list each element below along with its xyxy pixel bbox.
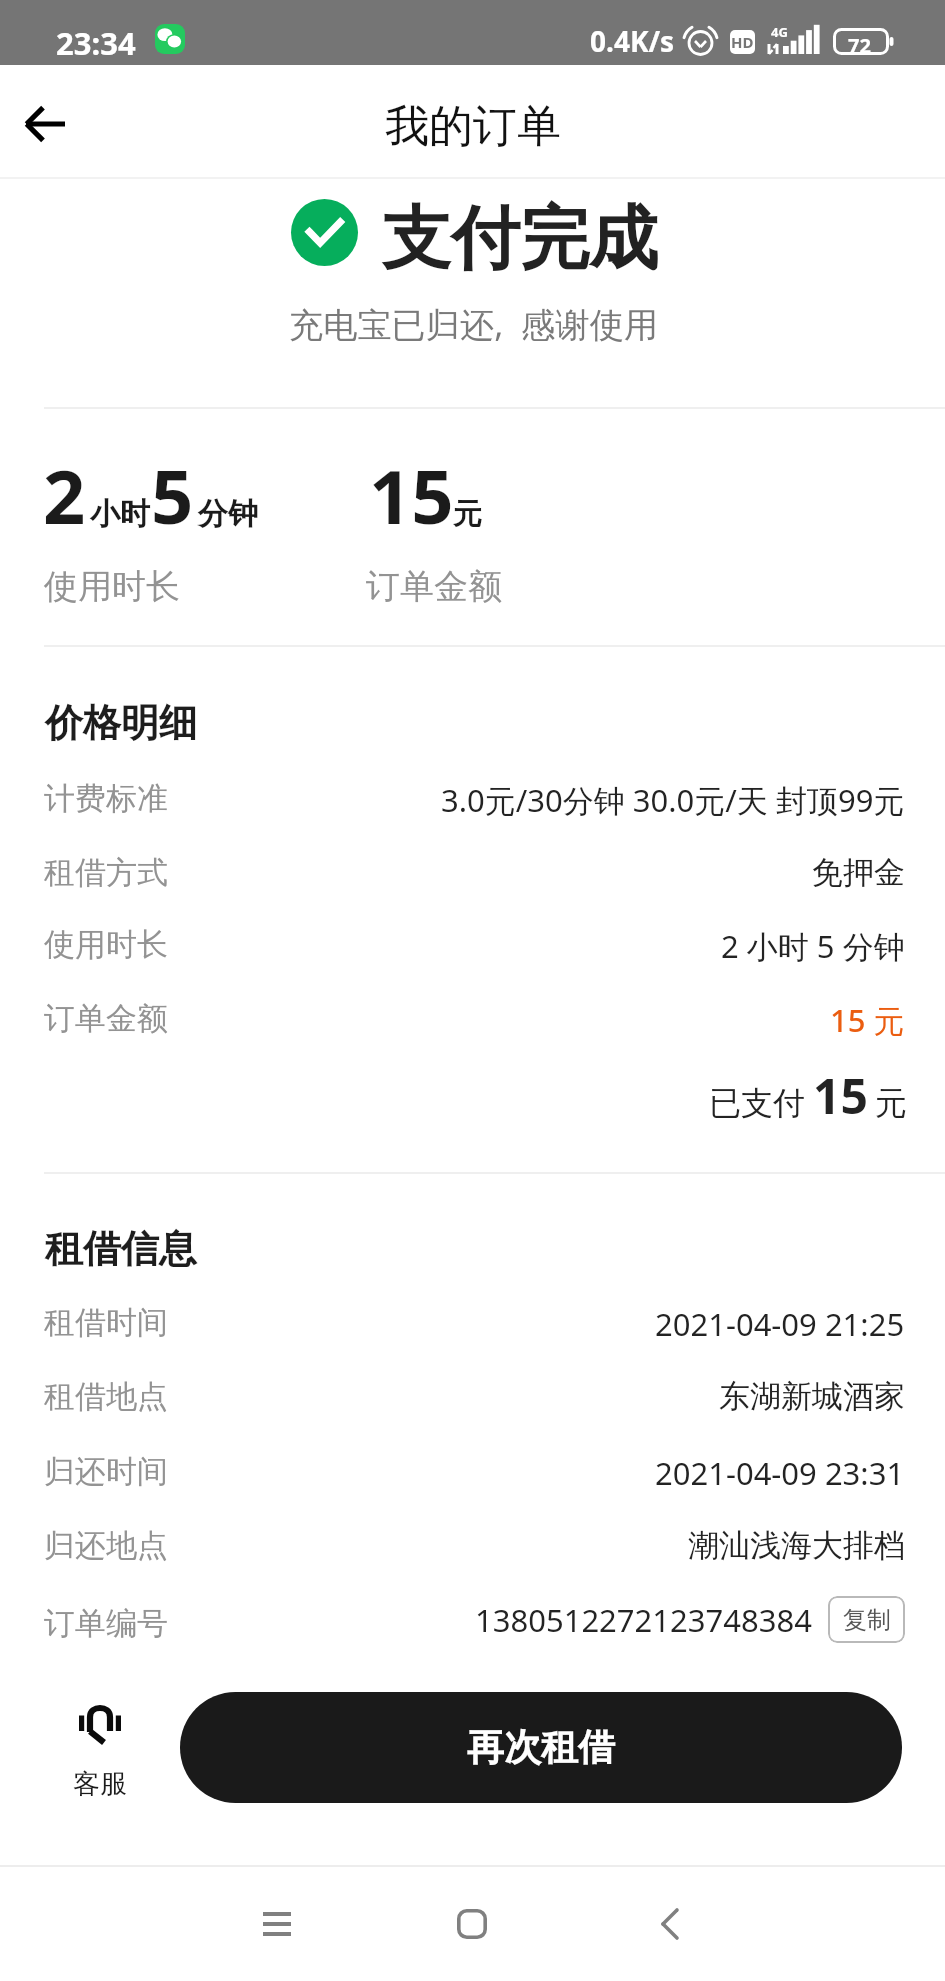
button[interactable]: 客服 [57,1701,143,1801]
staticText: 订单编号 [44,1604,168,1643]
staticText: 归还地点 [44,1526,168,1565]
staticText: 潮汕浅海大排档 [688,1526,905,1565]
staticText: 支付完成 [382,196,658,283]
staticText: 客服 [73,1767,127,1801]
staticText: HD [731,32,754,52]
staticText: 计费标准 [44,779,168,818]
staticText: 4G [771,23,788,41]
staticText: 我的订单 [385,99,561,154]
button[interactable]: Recent apps [237,1884,317,1964]
staticText: 2 小时 5 分钟 [721,925,905,967]
staticText: 东湖新城酒家 [719,1377,905,1416]
staticText: 23:34 [56,22,136,64]
staticText: 已支付 [709,1083,805,1123]
staticText: 归还时间 [44,1452,168,1491]
staticText: 3.0元/30分钟 30.0元/天 封顶99元 [441,779,905,821]
staticText: 订单金额 [44,999,168,1038]
staticText: 免押金 [812,853,905,892]
staticText: 5 [151,445,194,546]
button[interactable]: 再次租借 [180,1692,902,1803]
staticText: 2021-04-09 23:31 [655,1452,905,1494]
staticText: 充电宝已归还, 感谢使用 [289,300,658,347]
staticText: 0.4K/s [590,22,675,60]
staticText: 72 [848,32,871,59]
staticText: 使用时长 [44,565,180,608]
staticText: 租借地点 [44,1377,168,1416]
staticText: 再次租借 [467,1724,615,1771]
staticText: 复制 [843,1605,891,1635]
staticText: 1380512272123748384 [475,1599,812,1641]
button[interactable]: Home [432,1884,512,1964]
button[interactable]: Back [630,1884,710,1964]
staticText: 元 [875,1083,907,1123]
staticText: 2021-04-09 21:25 [655,1303,905,1345]
staticText: 租借方式 [44,853,168,892]
button[interactable]: 复制 [828,1596,905,1643]
staticText: 小时 [90,495,150,533]
staticText: 15 [813,1063,868,1128]
staticText: 租借信息 [45,1225,197,1273]
staticText: 使用时长 [44,925,168,964]
staticText: 15 元 [830,999,905,1041]
staticText: 租借时间 [44,1303,168,1342]
staticText: 2 [43,445,86,546]
staticText: 15 [369,445,454,546]
staticText: 分钟 [198,495,258,533]
button[interactable]: Back [8,87,82,161]
staticText: 价格明细 [45,699,197,747]
staticText: 订单金额 [366,565,502,608]
staticText: 元 [453,496,482,533]
